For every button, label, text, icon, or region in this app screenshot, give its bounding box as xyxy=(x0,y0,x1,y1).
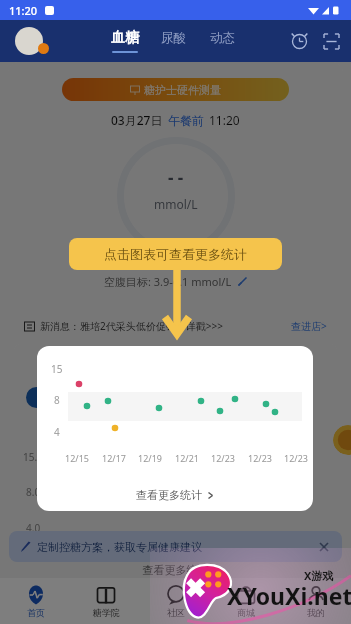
button[interactable]: 糖学院 xyxy=(71,585,141,618)
staticText: 12/21 xyxy=(175,452,199,464)
staticText: 11:20 xyxy=(9,3,38,18)
button[interactable]: 尿酸 xyxy=(161,30,186,52)
staticText: 空腹目标: 3.9-6.1 mmol/L xyxy=(104,274,232,289)
button[interactable]: Promotion xyxy=(333,425,351,455)
button[interactable]: Scan xyxy=(318,28,344,54)
staticText: 查进店> xyxy=(291,319,327,333)
staticText: 定制控糖方案，获取专属健康建议 xyxy=(37,540,202,554)
staticText: 03月27日 xyxy=(111,112,163,128)
staticText: 8.0 xyxy=(26,485,41,499)
staticText: 11:20 xyxy=(209,112,240,128)
staticText: 查看更多统计 xyxy=(136,488,202,502)
button[interactable]: 商城 xyxy=(211,585,281,618)
staticText: 新消息： xyxy=(40,320,80,333)
staticText: 商城 xyxy=(237,607,255,618)
staticText: 点击图表可查看更多统计 xyxy=(104,246,247,262)
button[interactable]: 社区 xyxy=(141,585,211,618)
staticText: 午餐前 xyxy=(168,113,204,128)
staticText: 12/17 xyxy=(102,452,126,464)
staticText: 雅培2代采头低价促销！详戳>>> xyxy=(80,319,223,333)
staticText: 12/23 xyxy=(248,452,272,464)
staticText: 8 xyxy=(54,393,60,407)
staticText: X游戏 xyxy=(304,568,334,583)
button[interactable]: 查看更多统计 xyxy=(37,484,313,506)
staticText: 12/23 xyxy=(284,452,308,464)
button[interactable]: 我的 xyxy=(281,585,351,618)
button[interactable]: Profile xyxy=(10,26,44,56)
button[interactable]: 血糖 xyxy=(111,29,139,53)
staticText: 12/15 xyxy=(65,452,89,464)
button[interactable]: 动态 xyxy=(210,30,235,52)
button[interactable]: 首页 xyxy=(0,585,71,618)
staticText: 12/19 xyxy=(138,452,162,464)
staticText: - - xyxy=(168,166,184,189)
staticText: 查看更多统计 xyxy=(8,563,343,577)
staticText: 尿酸 xyxy=(161,30,186,46)
button[interactable]: 糖护士硬件测量 xyxy=(62,78,289,101)
button[interactable]: Close xyxy=(316,539,332,555)
staticText: XYouXi.net xyxy=(227,580,351,611)
staticText: 15 xyxy=(51,362,63,376)
button[interactable]: 定制控糖方案，获取专属健康建议 xyxy=(9,531,342,562)
staticText: mmol/L xyxy=(154,196,198,212)
staticText: 4.0 xyxy=(26,521,41,535)
staticText: 15.0 xyxy=(23,450,43,464)
button[interactable]: Reminder xyxy=(286,28,312,54)
staticText: 血糖 xyxy=(111,29,139,47)
staticText: 糖护士硬件测量 xyxy=(144,83,221,97)
staticText: 我的 xyxy=(307,607,325,618)
staticText: 4 xyxy=(54,425,60,439)
staticText: 12/23 xyxy=(211,452,235,464)
staticText: 首页 xyxy=(27,607,45,618)
staticText: 社区 xyxy=(167,607,185,618)
staticText: 糖学院 xyxy=(93,607,120,618)
button[interactable]: 点击图表可查看更多统计 xyxy=(69,238,282,270)
staticText: 动态 xyxy=(210,30,235,46)
